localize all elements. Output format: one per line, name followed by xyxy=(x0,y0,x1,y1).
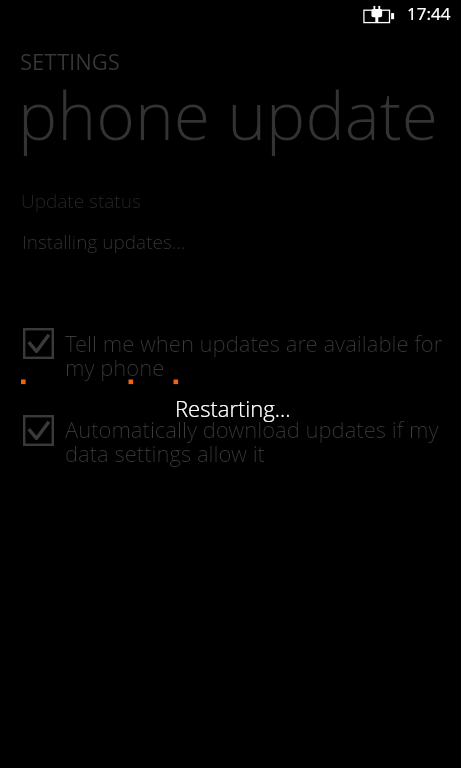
staticText: Installing updates… xyxy=(22,229,186,255)
staticText: Automatically download updates if my dat… xyxy=(65,414,439,468)
staticText: Update status xyxy=(21,188,141,214)
other: Battery charging xyxy=(360,2,396,26)
button[interactable]: Automatically download updates if my dat… xyxy=(23,415,453,469)
staticText: phone update xyxy=(18,69,438,159)
staticText: Tell me when updates are available for m… xyxy=(65,328,443,382)
button[interactable]: SETTINGS xyxy=(20,46,120,76)
button[interactable]: Tell me when updates are available for m… xyxy=(23,328,453,382)
staticText: 17:44 xyxy=(407,2,451,25)
staticText: Restarting… xyxy=(175,393,291,423)
